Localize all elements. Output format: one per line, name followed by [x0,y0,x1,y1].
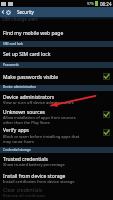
staticText: Remove all certificates [3,193,81,198]
button[interactable]: Unknown sources [0,107,113,126]
button[interactable]: Toggle setting [103,73,110,80]
staticText: Install from device storage [3,173,66,180]
staticText: Security [17,9,34,15]
button[interactable]: Install from device storage [0,170,113,185]
staticText: SIM change alert [2,16,38,22]
staticText: Trusted credentials [3,156,48,163]
staticText: SIM card lock [3,42,23,46]
button[interactable]: Find my mobile web page [0,21,113,41]
staticText: Allow installation of apps from sources … [3,115,81,125]
button[interactable]: Set up SIM card lock [0,47,113,63]
button[interactable]: Toggle setting [103,129,110,136]
staticText: Set up SIM card lock [3,51,51,58]
staticText: Credential storage [3,148,31,152]
staticText: Show trusted battery percentage [3,162,81,167]
button[interactable]: Make passwords visible [0,68,113,85]
staticText: 97% [87,1,94,6]
staticText: Device administration [3,85,36,89]
staticText: Unknown sources [3,109,45,116]
staticText: View or turn off device administrators [3,100,81,105]
button[interactable]: Navigate up [0,7,17,17]
button[interactable]: Trusted credentials [0,153,113,171]
staticText: Make passwords visible [3,74,59,81]
staticText: Block or warn before installing apps tha… [3,134,81,144]
staticText: Verify apps [3,127,29,134]
staticText: Install certificates from device storage [3,179,81,184]
button[interactable]: Verify apps [0,126,113,147]
staticText: Passwords [3,63,19,67]
staticText: Device administrators [3,94,55,101]
button[interactable]: Clear credentials [0,185,113,200]
staticText: 08:24 [100,1,112,7]
staticText: Clear credentials [3,187,43,194]
button[interactable]: Toggle setting [103,111,110,118]
staticText: Find my mobile web page [3,30,64,37]
button[interactable]: Device administrators [0,90,113,107]
